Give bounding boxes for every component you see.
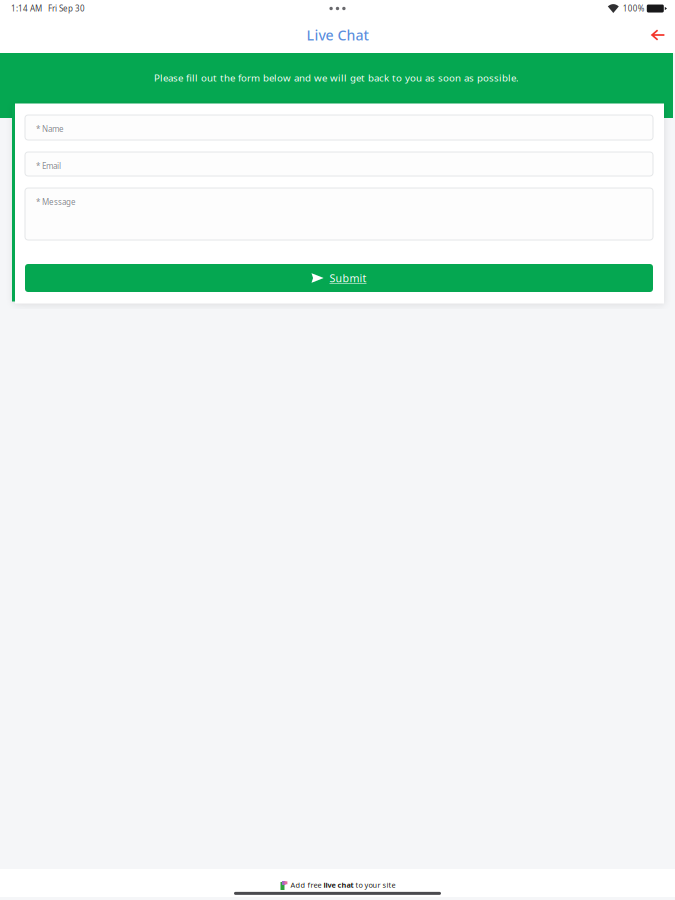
staticText: Live Chat — [306, 25, 368, 45]
staticText: 1:14 AM Fri Sep 30 — [11, 3, 85, 14]
staticText: 100% — [619, 3, 647, 14]
staticText: * Email — [36, 161, 61, 171]
staticText: Submit — [329, 271, 366, 285]
button[interactable]: Add free live chat to your site — [273, 871, 401, 890]
staticText: Please fill out the form below and we wi… — [154, 71, 519, 84]
button[interactable]: Submit — [25, 264, 653, 292]
staticText: * Message — [36, 197, 76, 207]
button[interactable]: Close — [646, 24, 670, 46]
staticText: * Name — [36, 124, 64, 134]
staticText: Add free live chat to your site — [290, 880, 395, 890]
